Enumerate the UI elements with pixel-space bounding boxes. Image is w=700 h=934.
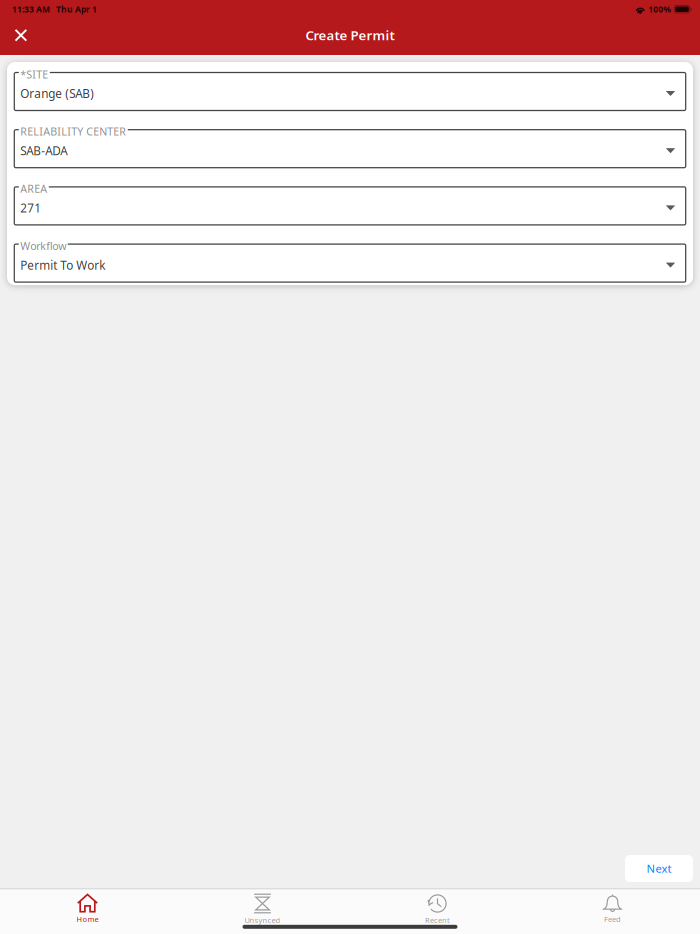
button[interactable]: Feed — [525, 889, 700, 934]
button[interactable]: Next — [625, 855, 693, 882]
staticText: Next — [646, 861, 671, 876]
button[interactable]: Recent — [350, 889, 525, 934]
staticText: AREA — [20, 181, 47, 196]
button[interactable]: Home — [0, 889, 175, 934]
staticText: 100% — [648, 3, 671, 15]
staticText: *SITE — [20, 67, 48, 81]
staticText: Workflow — [20, 239, 66, 253]
button[interactable]: Close — [0, 17, 50, 54]
button[interactable]: Permit To Work — [14, 244, 686, 282]
staticText: Orange (SAB) — [20, 85, 94, 101]
staticText: Create Permit — [305, 26, 394, 44]
staticText: Recent — [425, 915, 450, 925]
staticText: 271 — [20, 200, 41, 216]
button[interactable]: 271 — [14, 187, 686, 225]
staticText: 11:33 AM Thu Apr 1 — [12, 3, 97, 15]
staticText: Unsynced — [244, 915, 280, 925]
button[interactable]: SAB-ADA — [14, 130, 686, 168]
staticText: RELIABILITY CENTER — [20, 124, 126, 139]
staticText: Home — [76, 914, 98, 924]
button[interactable]: Orange (SAB) — [14, 72, 686, 110]
button[interactable]: Unsynced — [175, 889, 350, 934]
staticText: Permit To Work — [20, 257, 105, 273]
staticText: Feed — [604, 914, 621, 924]
staticText: SAB-ADA — [20, 143, 67, 159]
